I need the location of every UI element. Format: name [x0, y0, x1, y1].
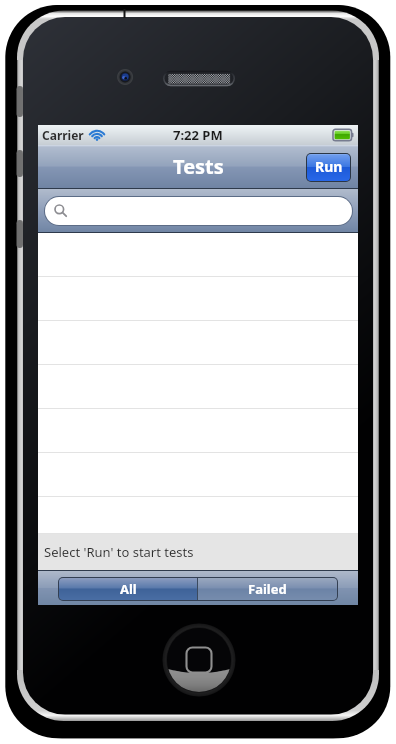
button[interactable]: Run: [307, 154, 350, 181]
button[interactable]: [38, 321, 358, 365]
button[interactable]: [38, 365, 358, 409]
staticText: 7:22 PM: [173, 126, 223, 144]
button[interactable]: [38, 497, 358, 534]
button[interactable]: [38, 453, 358, 497]
staticText: Tests: [173, 153, 224, 180]
button[interactable]: Search: [45, 197, 352, 225]
staticText: Failed: [248, 580, 287, 598]
button[interactable]: All: [59, 578, 197, 600]
staticText: Carrier: [42, 127, 84, 143]
button[interactable]: [38, 233, 358, 277]
staticText: Select 'Run' to start tests: [44, 543, 194, 561]
staticText: All: [120, 580, 137, 598]
button[interactable]: [38, 277, 358, 321]
button[interactable]: Failed: [198, 578, 337, 600]
staticText: Run: [315, 157, 343, 176]
button[interactable]: [38, 409, 358, 453]
